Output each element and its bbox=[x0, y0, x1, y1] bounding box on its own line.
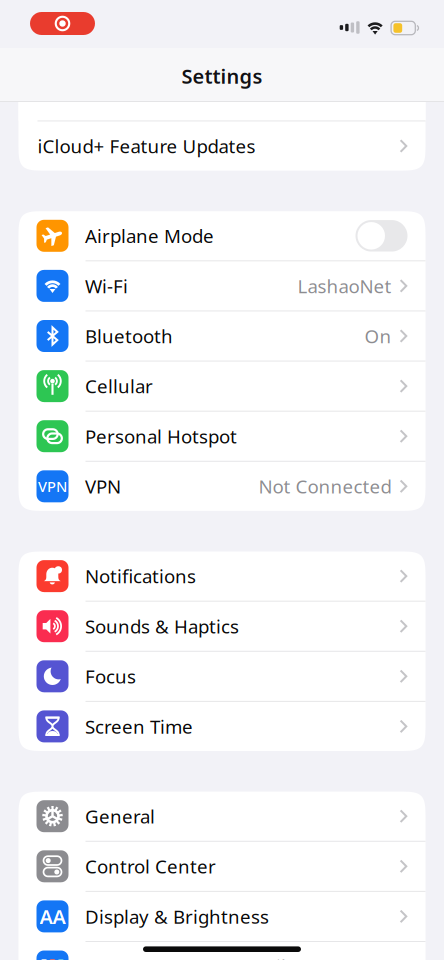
staticText: Bluetooth bbox=[85, 324, 173, 348]
button[interactable]: Sounds & Haptics bbox=[18, 602, 425, 651]
staticText: Control Center bbox=[85, 854, 216, 879]
button[interactable]: Control Center bbox=[18, 842, 425, 891]
staticText: Settings bbox=[181, 63, 262, 89]
staticText: General bbox=[85, 804, 155, 829]
button[interactable]: Cellular bbox=[18, 361, 425, 411]
staticText: Wi-Fi bbox=[85, 273, 128, 298]
staticText: AA bbox=[39, 903, 65, 930]
button[interactable]: Notifications bbox=[18, 551, 425, 601]
button[interactable]: Personal Hotspot bbox=[18, 412, 425, 461]
button[interactable]: VPN bbox=[18, 462, 425, 511]
button[interactable]: Bluetooth bbox=[18, 311, 425, 361]
staticText: Display & Brightness bbox=[85, 904, 269, 929]
button[interactable]: AA bbox=[18, 892, 425, 941]
staticText: Not Connected bbox=[258, 474, 391, 499]
staticText: Focus bbox=[85, 664, 136, 689]
button[interactable]: iCloud+ Feature Updates bbox=[18, 121, 425, 171]
button[interactable]: Screen Time bbox=[18, 702, 425, 751]
button[interactable]: Airplane Mode bbox=[18, 211, 425, 260]
button[interactable]: Focus bbox=[18, 652, 425, 701]
staticText: Screen Time bbox=[85, 714, 193, 739]
staticText: Notifications bbox=[85, 564, 196, 588]
staticText: VPN bbox=[85, 474, 121, 499]
staticText: iCloud+ Feature Updates bbox=[37, 134, 255, 158]
staticText: Airplane Mode bbox=[85, 223, 214, 248]
button[interactable]: Home Screen & App Library bbox=[18, 942, 425, 960]
staticText: VPN bbox=[38, 477, 67, 496]
staticText: Sounds & Haptics bbox=[85, 614, 239, 639]
staticText: LashaoNet bbox=[297, 273, 391, 298]
staticText: Personal Hotspot bbox=[85, 424, 237, 449]
button[interactable]: General bbox=[18, 792, 425, 841]
button[interactable]: Wi-Fi bbox=[18, 261, 425, 310]
staticText: On bbox=[364, 324, 391, 348]
staticText: Cellular bbox=[85, 374, 153, 398]
